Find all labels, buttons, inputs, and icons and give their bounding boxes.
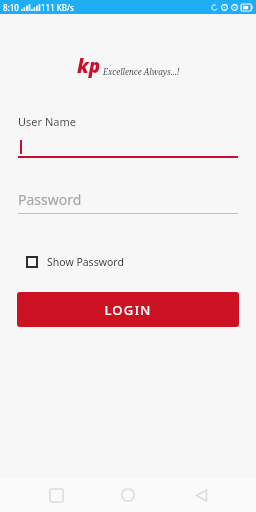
- button[interactable]: Back: [184, 478, 218, 512]
- staticText: LOGIN: [104, 301, 152, 319]
- staticText: 8:10: [3, 2, 19, 13]
- staticText: Show Password: [47, 255, 124, 269]
- button[interactable]: Recent apps: [39, 478, 73, 512]
- staticText: Excellence Always...!: [103, 66, 180, 77]
- staticText: User Name: [18, 114, 76, 129]
- staticText: 111 KB/s: [41, 2, 74, 13]
- button[interactable]: Home: [111, 478, 145, 512]
- staticText: kp: [77, 53, 101, 79]
- button[interactable]: Password: [18, 188, 238, 214]
- button[interactable]: LOGIN: [17, 292, 239, 327]
- staticText: Password: [18, 190, 82, 209]
- button[interactable]: User Name: [18, 114, 238, 158]
- button[interactable]: Show Password: [24, 252, 126, 272]
